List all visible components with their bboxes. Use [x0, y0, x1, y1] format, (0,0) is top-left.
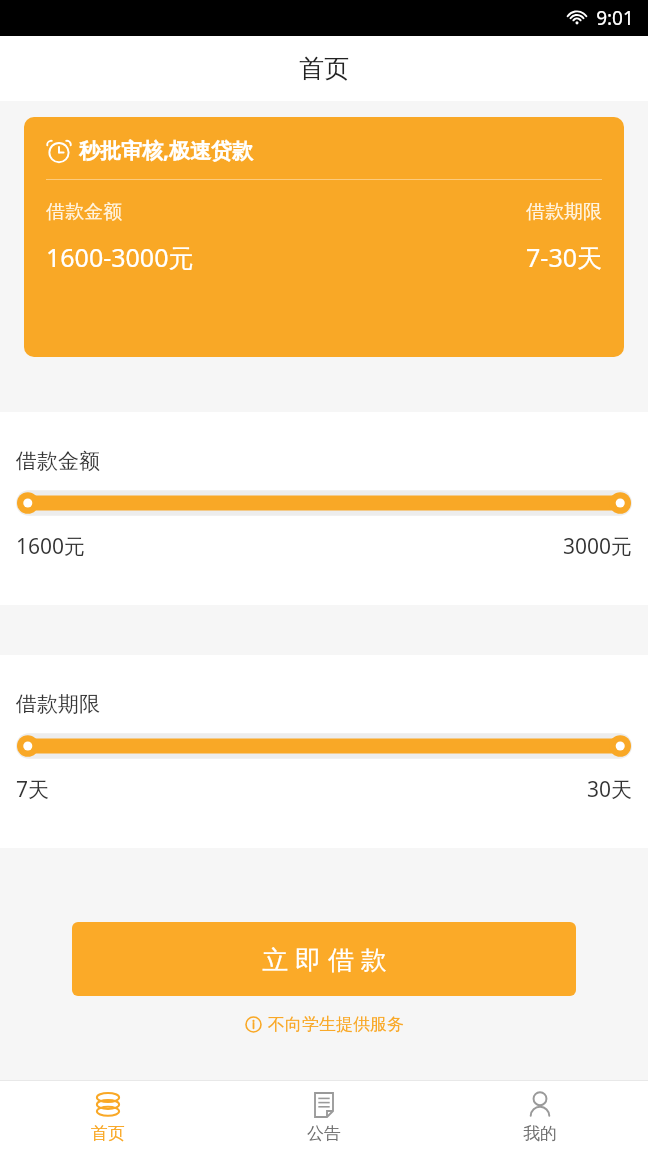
staticText: 1600元: [16, 532, 86, 561]
button[interactable]: Range slider: [16, 731, 632, 761]
staticText: 我的: [523, 1123, 557, 1144]
staticText: 3000元: [562, 532, 632, 561]
staticText: 借款期限: [16, 691, 100, 717]
staticText: 不向学生提供服务: [268, 1014, 404, 1035]
button[interactable]: Range slider: [16, 488, 632, 518]
staticText: 1600-3000元: [46, 240, 194, 274]
staticText: 7-30天: [526, 240, 602, 274]
staticText: 秒批审核,极速贷款: [79, 136, 253, 165]
button[interactable]: 秒批审核,极速贷款: [24, 117, 624, 357]
staticText: 立 即 借 款: [262, 941, 387, 977]
staticText: 借款期限: [526, 200, 602, 224]
staticText: 首页: [299, 53, 349, 84]
button[interactable]: 立 即 借 款: [72, 922, 576, 996]
staticText: 7天: [16, 775, 50, 804]
button[interactable]: 公告: [216, 1081, 432, 1152]
staticText: 9:01: [596, 5, 634, 31]
button[interactable]: 我的: [432, 1081, 648, 1152]
button[interactable]: 首页: [0, 1081, 216, 1152]
staticText: 公告: [307, 1123, 341, 1144]
staticText: 30天: [586, 775, 632, 804]
staticText: 借款金额: [46, 200, 122, 224]
staticText: 首页: [91, 1123, 125, 1144]
staticText: 借款金额: [16, 448, 100, 474]
